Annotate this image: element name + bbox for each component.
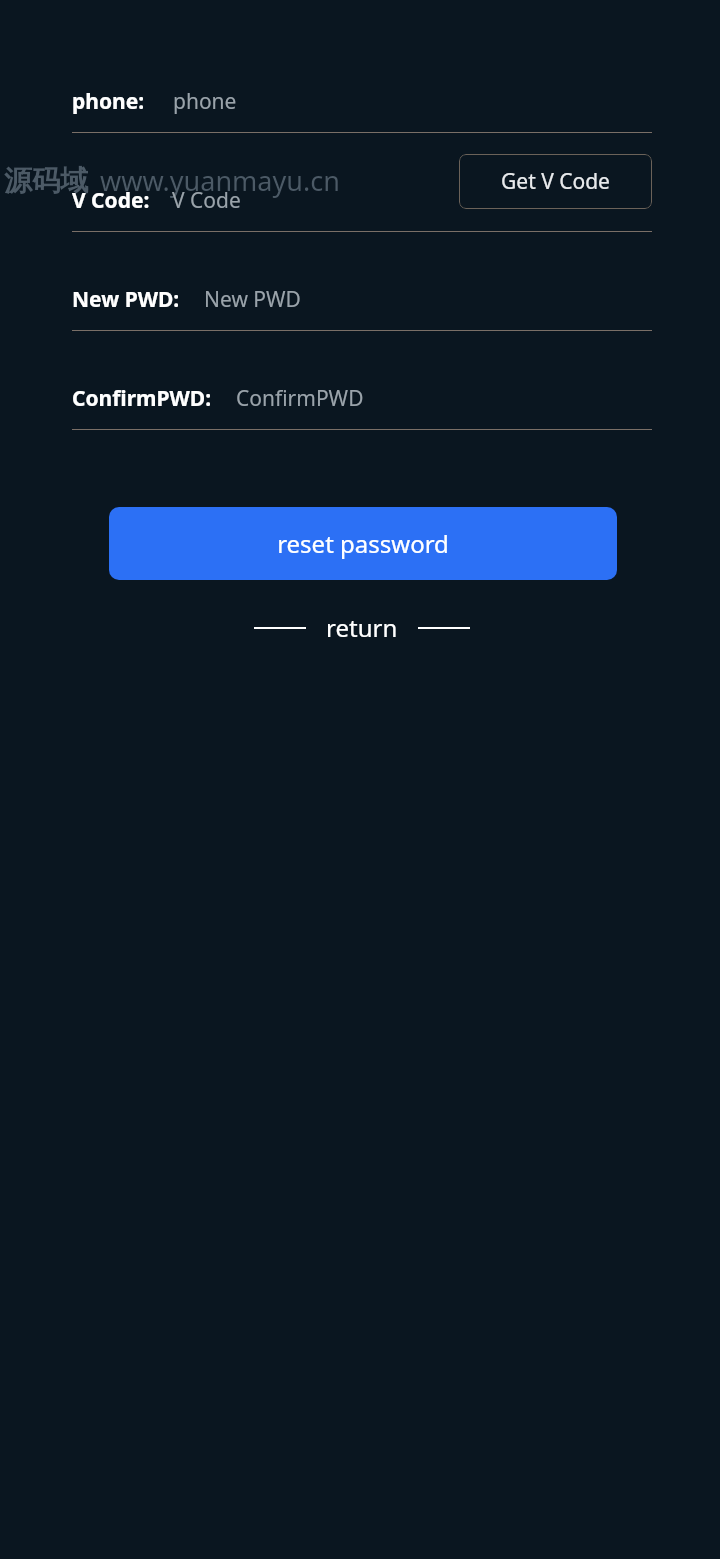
staticText: ConfirmPWD:	[72, 384, 212, 413]
button[interactable]: Get V Code	[459, 154, 652, 209]
staticText: reset password	[277, 527, 449, 560]
button[interactable]: New PWD	[204, 268, 652, 330]
staticText: return	[326, 611, 398, 644]
staticText: New PWD	[204, 285, 301, 314]
staticText: V Code	[172, 186, 241, 215]
staticText: phone:	[72, 87, 145, 116]
staticText: www.yuanmayu.cn	[100, 162, 340, 199]
button[interactable]: phone	[173, 70, 652, 132]
staticText: Get V Code	[501, 167, 610, 196]
staticText: New PWD:	[72, 285, 180, 314]
staticText: phone	[173, 87, 237, 116]
staticText: ConfirmPWD	[236, 384, 364, 413]
staticText: 源码域	[4, 163, 88, 198]
button[interactable]: ConfirmPWD	[236, 367, 652, 429]
button[interactable]: reset password	[109, 507, 617, 580]
button[interactable]: return	[254, 611, 470, 644]
staticText: V Code:	[72, 186, 150, 215]
button[interactable]: V Code	[172, 169, 652, 231]
